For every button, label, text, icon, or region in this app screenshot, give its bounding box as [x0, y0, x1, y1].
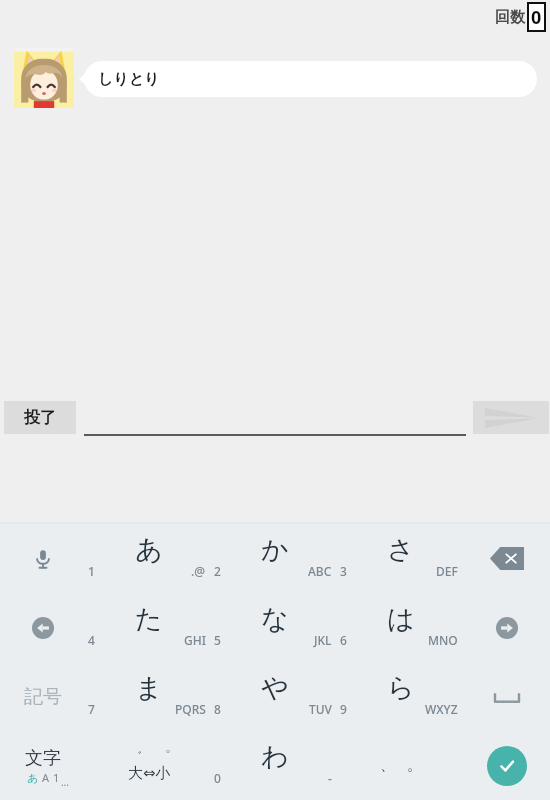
staticText: 0: [531, 5, 542, 30]
staticText: JKL: [314, 632, 332, 648]
staticText: 8: [214, 701, 221, 717]
staticText: や: [261, 671, 289, 705]
staticText: -: [328, 770, 332, 786]
staticText: 、: [380, 756, 395, 775]
button[interactable]: さ: [338, 524, 464, 593]
button[interactable]: Space: [464, 662, 550, 731]
button[interactable]: Toggle small and large: [86, 731, 212, 800]
staticText: あ: [27, 771, 39, 785]
staticText: は: [387, 602, 415, 636]
button[interactable]: な: [212, 593, 338, 662]
staticText: TUV: [309, 701, 332, 717]
staticText: 5: [214, 632, 221, 648]
staticText: DEF: [436, 563, 458, 579]
staticText: しりとり: [98, 70, 160, 89]
button[interactable]: わ: [212, 731, 338, 800]
staticText: か: [261, 533, 289, 567]
button[interactable]: Voice input: [0, 524, 86, 593]
button[interactable]: Move cursor left: [0, 593, 86, 662]
button[interactable]: Enter: [464, 731, 550, 800]
staticText: WXYZ: [425, 701, 458, 717]
staticText: ABC: [308, 563, 332, 579]
staticText: 。: [407, 756, 422, 775]
button[interactable]: 記号: [0, 662, 86, 731]
staticText: 大⇔小: [128, 764, 171, 783]
button[interactable]: Delete: [464, 524, 550, 593]
staticText: A: [42, 770, 50, 785]
staticText: 7: [88, 701, 95, 717]
staticText: 回数: [495, 8, 525, 27]
button[interactable]: た: [86, 593, 212, 662]
button[interactable]: ら: [338, 662, 464, 731]
staticText: た: [135, 602, 163, 636]
staticText: 3: [340, 563, 347, 579]
button[interactable]: 投了: [4, 401, 76, 434]
staticText: GHI: [184, 632, 206, 648]
staticText: 9: [340, 701, 347, 717]
button[interactable]: あ: [86, 524, 212, 593]
staticText: PQRS: [175, 701, 206, 717]
button[interactable]: ま: [86, 662, 212, 731]
staticText: 2: [214, 563, 221, 579]
button[interactable]: か: [212, 524, 338, 593]
button[interactable]: は: [338, 593, 464, 662]
staticText: .@: [191, 563, 206, 579]
staticText: 0: [214, 770, 221, 786]
staticText: 投了: [24, 408, 56, 428]
staticText: 文字: [25, 747, 61, 770]
staticText: 1: [53, 770, 60, 785]
button[interactable]: [84, 400, 466, 436]
staticText: わ: [261, 740, 289, 774]
button[interactable]: Switch character mode: [0, 731, 86, 800]
button[interactable]: Move cursor right: [464, 593, 550, 662]
button[interactable]: Send: [473, 401, 549, 434]
staticText: 4: [88, 632, 95, 648]
staticText: 記号: [24, 685, 62, 709]
staticText: ゛: [129, 748, 143, 764]
staticText: ら: [387, 671, 415, 705]
staticText: な: [261, 602, 289, 636]
staticText: ま: [135, 671, 163, 705]
staticText: ゜: [157, 748, 171, 764]
staticText: MNO: [428, 632, 458, 648]
staticText: あ: [135, 533, 163, 567]
staticText: 6: [340, 632, 347, 648]
button[interactable]: Punctuation: [338, 731, 464, 800]
staticText: さ: [387, 533, 415, 567]
staticText: …: [61, 775, 69, 789]
staticText: 1: [88, 563, 95, 579]
button[interactable]: や: [212, 662, 338, 731]
